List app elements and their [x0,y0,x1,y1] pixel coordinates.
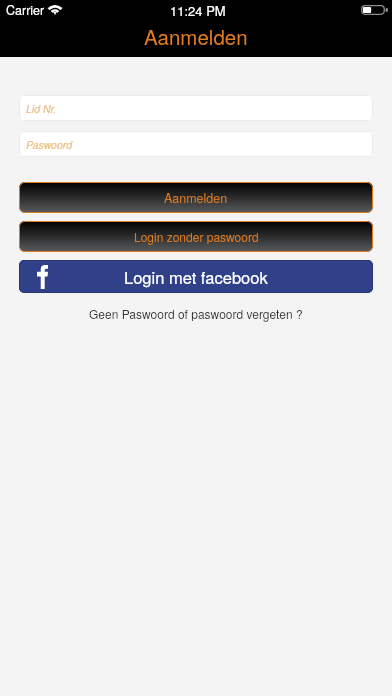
staticText: Aanmelden [144,21,248,50]
staticText: 11:24 PM [170,1,226,20]
button[interactable]: Login met facebook [19,260,373,293]
other: Facebook [37,265,48,289]
other: Wi-Fi [48,5,62,15]
staticText: Aanmelden [164,189,228,207]
button[interactable]: Paswoord [19,131,373,157]
staticText: Carrier [6,1,45,19]
staticText: Paswoord [26,137,73,152]
staticText: Login zonder paswoord [134,228,259,245]
button[interactable]: Aanmelden [19,182,373,213]
staticText: Geen Paswoord of paswoord vergeten ? [89,305,303,322]
staticText: Login met facebook [124,265,268,289]
button[interactable]: Geen Paswoord of paswoord vergeten ? [0,305,392,322]
staticText: Lid Nr. [26,101,57,116]
button[interactable]: Login zonder paswoord [19,221,373,252]
button[interactable]: Lid Nr. [19,95,373,121]
other: Battery [361,5,388,15]
